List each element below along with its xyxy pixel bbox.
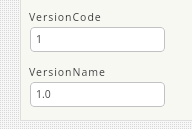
button[interactable]: VersionCode text field	[30, 27, 165, 52]
staticText: 1	[36, 32, 43, 46]
staticText: VersionCode	[29, 10, 102, 24]
staticText: 1.0	[36, 87, 51, 101]
button[interactable]: VersionName text field	[30, 82, 165, 107]
staticText: VersionName	[29, 65, 106, 79]
